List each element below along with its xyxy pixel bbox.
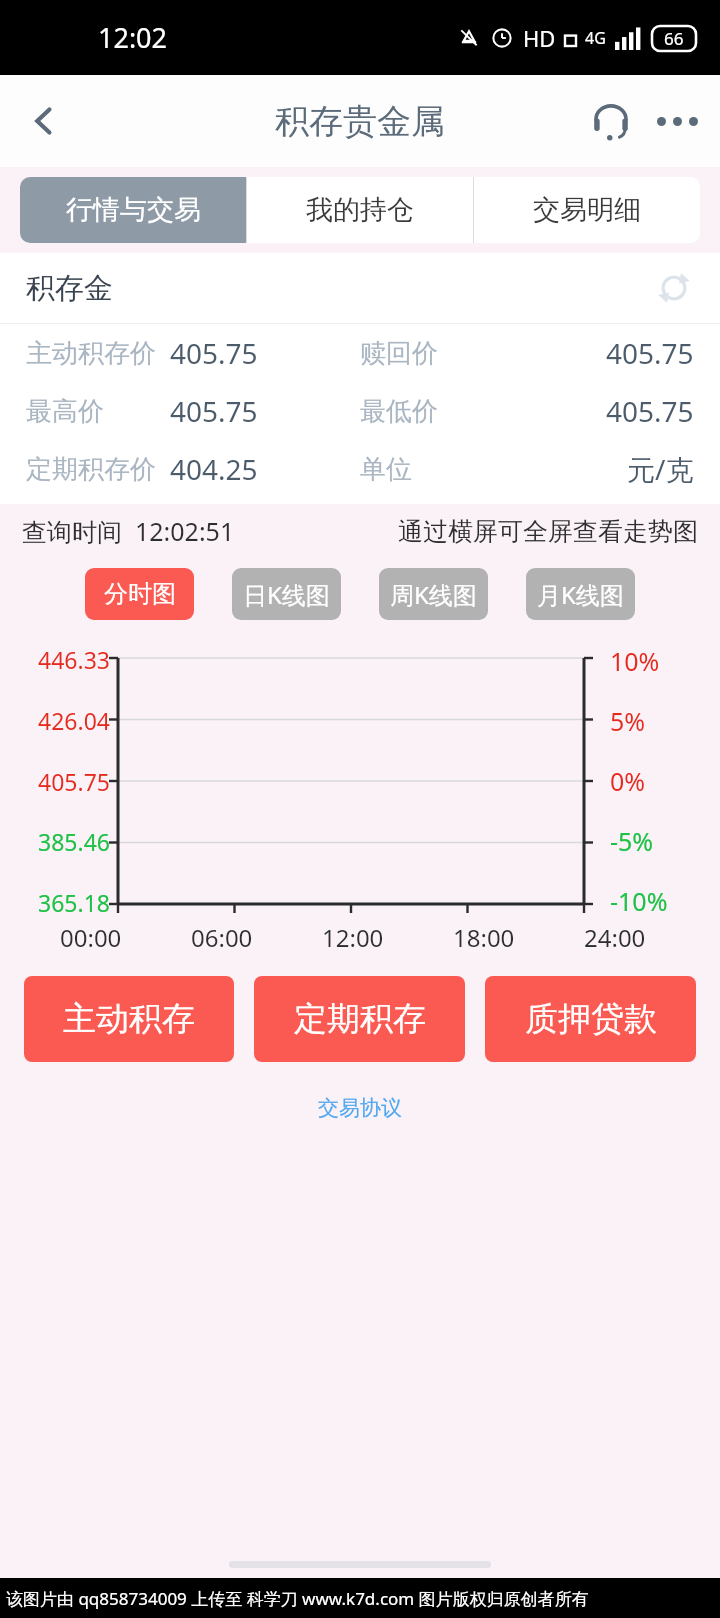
staticText: 交易明细	[533, 193, 641, 227]
staticText: 元/克	[627, 450, 694, 488]
staticText: 405.75	[606, 392, 694, 430]
staticText: 66	[664, 27, 684, 50]
staticText: 最高价	[26, 395, 104, 428]
staticText: 405.75	[606, 334, 694, 372]
staticText: 行情与交易	[66, 193, 201, 227]
staticText: 12:00	[322, 921, 384, 954]
staticText: -10%	[610, 884, 668, 918]
staticText: 00:00	[60, 921, 122, 954]
button[interactable]: More options	[644, 88, 710, 154]
staticText: 主动积存价	[26, 337, 156, 370]
staticText: 12:02	[98, 19, 168, 56]
button[interactable]: 主动积存	[24, 976, 234, 1062]
staticText: 单位	[360, 453, 412, 486]
staticText: 426.04	[38, 705, 110, 736]
staticText: 24:00	[584, 921, 646, 954]
staticText: -5%	[610, 824, 654, 858]
button[interactable]: 月K线图	[526, 568, 635, 620]
staticText: 定期积存价	[26, 453, 156, 486]
staticText: 405.75	[38, 766, 110, 797]
staticText: 我的持仓	[306, 193, 414, 227]
staticText: 分时图	[104, 579, 176, 609]
staticText: 404.25	[170, 450, 258, 488]
staticText: 405.75	[170, 392, 258, 430]
staticText: 10%	[610, 644, 660, 678]
staticText: 最低价	[360, 395, 438, 428]
staticText: 365.18	[38, 887, 110, 918]
button[interactable]: 行情与交易	[20, 177, 246, 243]
staticText: 月K线图	[537, 578, 624, 611]
button[interactable]: 我的持仓	[247, 177, 473, 243]
staticText: HD	[523, 23, 556, 53]
staticText: 06:00	[191, 921, 253, 954]
button[interactable]: Refresh	[650, 264, 698, 312]
button[interactable]: Customer service	[578, 88, 644, 154]
staticText: 18:00	[453, 921, 515, 954]
staticText: 日K线图	[243, 578, 330, 611]
staticText: 405.75	[170, 334, 258, 372]
button[interactable]: Back	[14, 91, 74, 151]
button[interactable]: 分时图	[85, 568, 194, 620]
staticText: 5%	[610, 704, 646, 738]
staticText: 主动积存	[63, 998, 195, 1040]
staticText: 该图片由 qq858734009 上传至 科学刀 www.k7d.com 图片版…	[6, 1587, 589, 1610]
button[interactable]: 质押贷款	[485, 976, 696, 1062]
button[interactable]: 周K线图	[379, 568, 488, 620]
staticText: 积存贵金属	[275, 100, 445, 143]
staticText: 定期积存	[294, 998, 426, 1040]
staticText: 查询时间 12:02:51	[22, 514, 235, 548]
button[interactable]: 定期积存	[254, 976, 465, 1062]
staticText: 0%	[610, 764, 646, 798]
button[interactable]: 交易协议	[306, 1090, 414, 1126]
staticText: 赎回价	[360, 337, 438, 370]
staticText: 通过横屏可全屏查看走势图	[398, 516, 698, 547]
staticText: 4G	[585, 27, 606, 49]
staticText: 385.46	[38, 826, 110, 857]
staticText: 积存金	[26, 270, 113, 307]
staticText: 446.33	[38, 644, 110, 675]
staticText: 质押贷款	[525, 998, 657, 1040]
button[interactable]: 交易明细	[474, 177, 700, 243]
button[interactable]: 日K线图	[232, 568, 341, 620]
staticText: 周K线图	[390, 578, 477, 611]
